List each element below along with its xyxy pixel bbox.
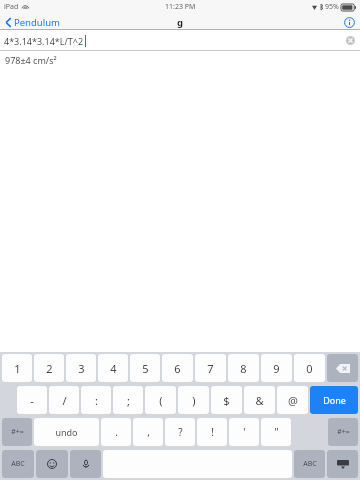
button[interactable]: undo (34, 418, 99, 446)
staticText: " (274, 425, 279, 439)
staticText: ? (178, 425, 183, 439)
button[interactable]: " (261, 418, 291, 446)
staticText: ABC (11, 459, 25, 469)
button[interactable]: 7 (195, 354, 226, 382)
button[interactable]: ABC (294, 450, 325, 478)
staticText: undo (55, 426, 78, 438)
staticText: ( (159, 393, 163, 408)
staticText: Done (323, 394, 346, 406)
button[interactable]: 1 (2, 354, 32, 382)
staticText: ) (192, 393, 196, 408)
button[interactable]: Dictation (70, 450, 101, 478)
button[interactable]: Emoji (36, 450, 68, 478)
button[interactable]: - (17, 386, 47, 414)
button[interactable]: 4*3.14*3.14*L/T^2 (0, 30, 360, 51)
button[interactable]: Clear text (346, 36, 355, 45)
button[interactable]: . (101, 418, 131, 446)
staticText: 2 (46, 361, 53, 376)
button[interactable]: 9 (261, 354, 292, 382)
staticText: ABC (303, 459, 317, 469)
staticText: @ (288, 393, 298, 408)
button[interactable]: 0 (294, 354, 325, 382)
staticText: 0 (306, 361, 313, 376)
button[interactable]: 3 (66, 354, 96, 382)
button[interactable]: & (244, 386, 275, 414)
staticText: #+= (11, 427, 24, 437)
button[interactable]: ; (113, 386, 143, 414)
button[interactable]: 8 (228, 354, 259, 382)
button[interactable]: #+= (2, 418, 32, 446)
button[interactable]: ! (197, 418, 227, 446)
staticText: 6 (174, 361, 181, 376)
staticText: 11:23 PM (165, 2, 196, 12)
button[interactable]: ? (165, 418, 195, 446)
button[interactable]: $ (211, 386, 242, 414)
staticText: & (255, 393, 264, 408)
staticText: 5 (142, 361, 149, 376)
staticText: g (177, 16, 184, 29)
button[interactable]: ( (145, 386, 176, 414)
button[interactable]: 2 (34, 354, 64, 382)
staticText: 7 (207, 361, 214, 376)
staticText: , (147, 425, 150, 439)
button[interactable]: Pendulum (0, 14, 66, 30)
staticText: iPad (4, 2, 19, 12)
button[interactable]: Info (338, 14, 360, 30)
button[interactable]: : (81, 386, 111, 414)
button[interactable]: @ (277, 386, 308, 414)
staticText: / (62, 393, 67, 408)
button[interactable]: Hide keyboard (327, 450, 358, 478)
staticText: 4*3.14*3.14*L/T^2 (4, 35, 84, 47)
staticText: . (115, 425, 118, 439)
staticText: 1 (14, 361, 21, 376)
staticText: 3 (78, 361, 85, 376)
staticText: 95% (325, 2, 339, 12)
button[interactable]: 4 (98, 354, 128, 382)
button[interactable]: Backspace (327, 354, 358, 382)
staticText: ; (127, 393, 130, 408)
staticText: ! (211, 425, 214, 439)
button[interactable]: #+= (328, 418, 358, 446)
staticText: Pendulum (14, 16, 60, 29)
staticText: #+= (337, 427, 350, 437)
staticText: : (95, 393, 98, 408)
button[interactable]: ) (178, 386, 209, 414)
button[interactable]: 6 (162, 354, 193, 382)
button[interactable]: Done (310, 386, 358, 414)
staticText: - (30, 393, 34, 408)
staticText: $ (223, 393, 230, 408)
staticText: 4 (110, 361, 117, 376)
button[interactable]: 5 (130, 354, 160, 382)
staticText: 978±4 cm/s² (5, 54, 57, 66)
button[interactable]: / (49, 386, 79, 414)
staticText: ' (243, 425, 246, 439)
button[interactable]: ABC (2, 450, 34, 478)
button[interactable]: , (133, 418, 163, 446)
staticText: 8 (240, 361, 247, 376)
staticText: 9 (273, 361, 280, 376)
button[interactable]: ' (229, 418, 259, 446)
